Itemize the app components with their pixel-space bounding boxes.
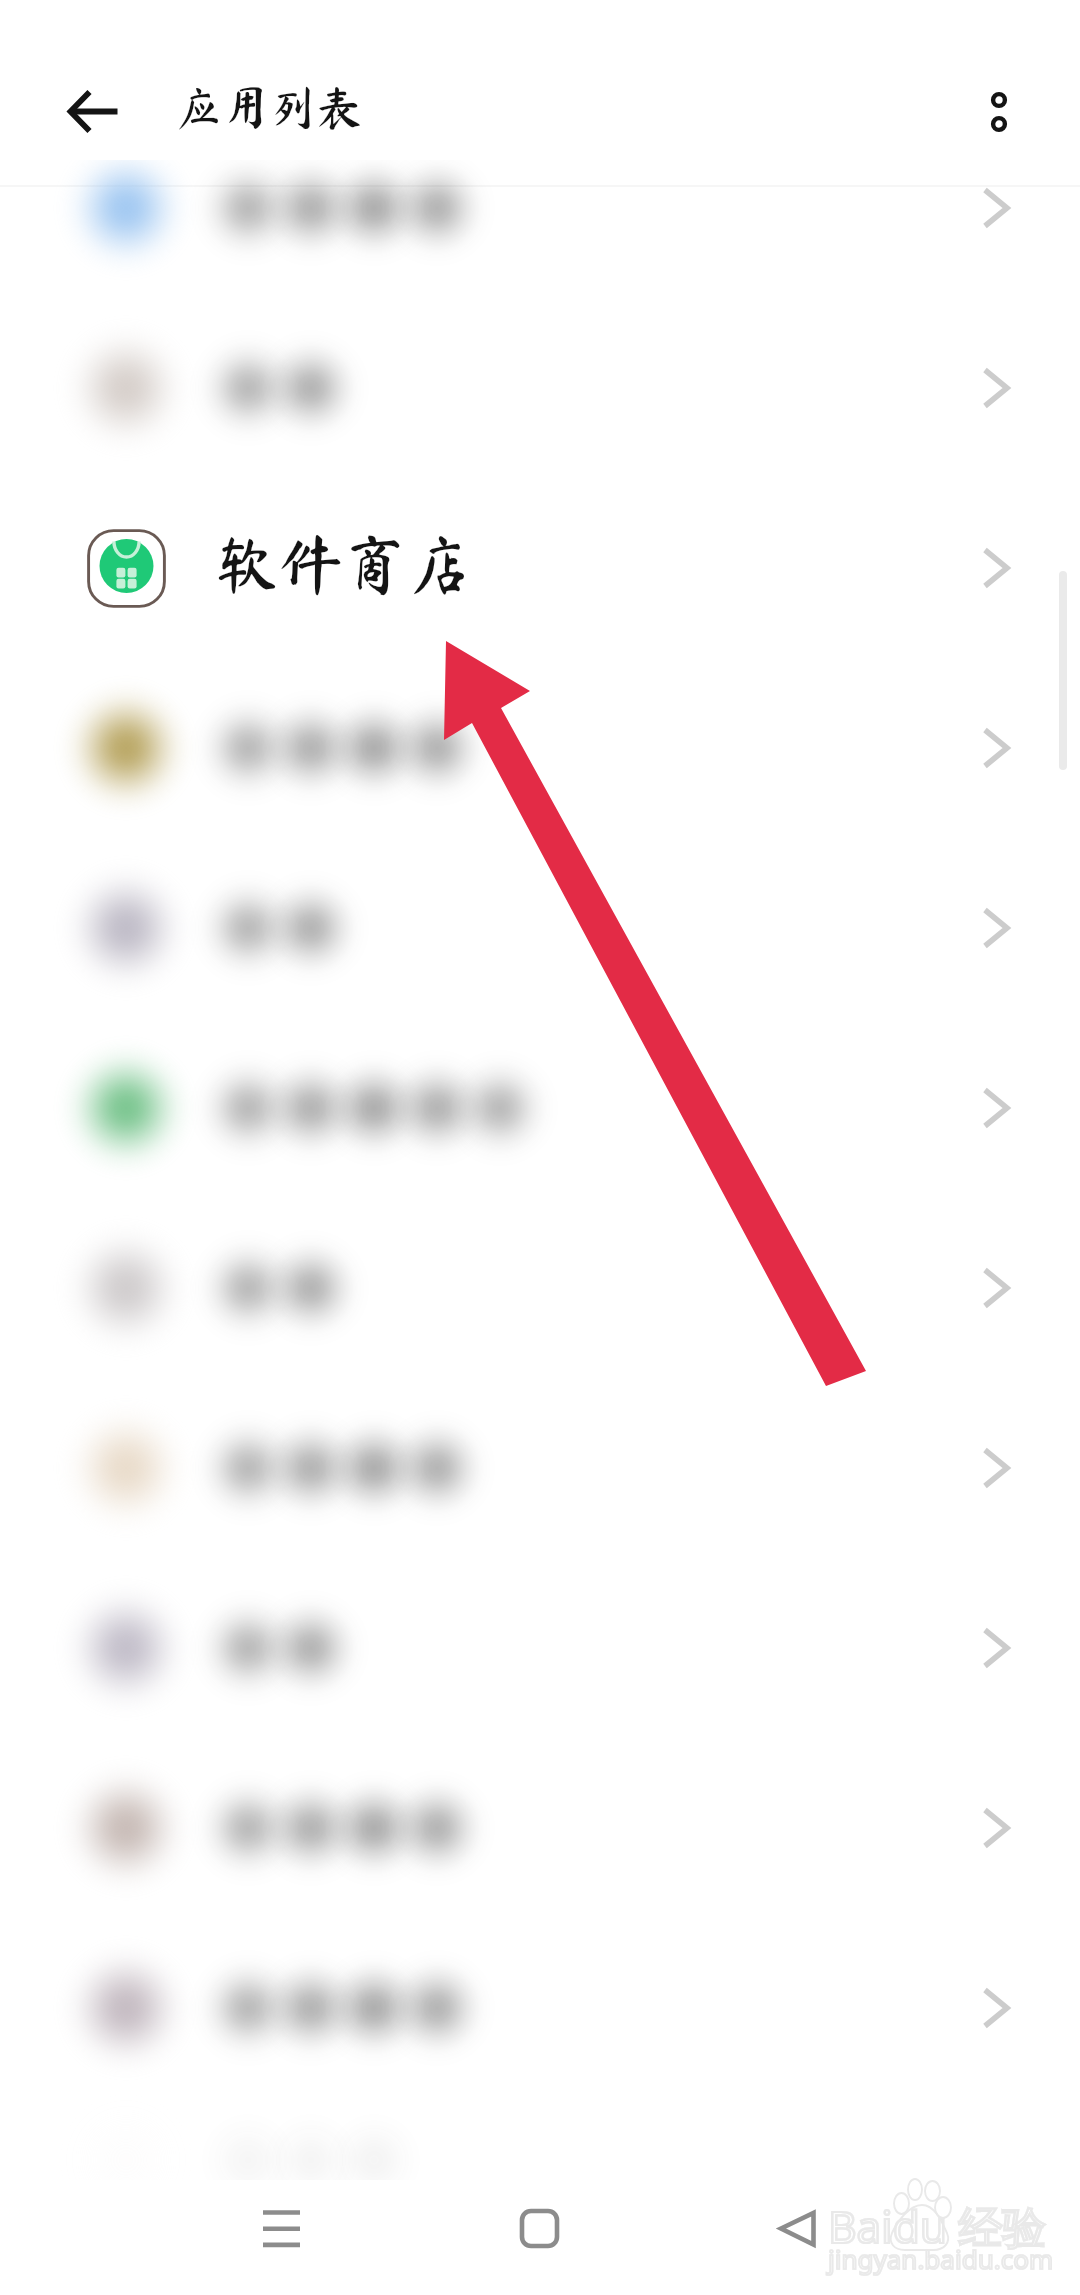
staticText: 应用列表 (175, 84, 363, 131)
button[interactable] (0, 2070, 1080, 2250)
button[interactable] (0, 658, 1080, 838)
button[interactable] (0, 1918, 1080, 2098)
button[interactable]: Home (490, 2185, 590, 2275)
button[interactable] (0, 1738, 1080, 1918)
button[interactable] (0, 1198, 1080, 1378)
staticText: jingyan.baidu.com (828, 2241, 1054, 2276)
button[interactable] (0, 118, 1080, 298)
button[interactable]: Back (750, 2185, 850, 2275)
button[interactable] (0, 838, 1080, 1018)
button[interactable]: Recent apps (231, 2185, 331, 2275)
staticText: Baidu 经验 (828, 2196, 1047, 2256)
staticText: 软件商店 (215, 532, 471, 596)
button[interactable] (0, 1378, 1080, 1558)
button[interactable] (0, 298, 1080, 478)
button[interactable] (0, 1018, 1080, 1198)
button[interactable] (0, 1558, 1080, 1738)
button[interactable]: 软件商店 (0, 478, 1080, 658)
button[interactable]: Back (44, 64, 140, 160)
button[interactable]: More options (955, 64, 1045, 160)
